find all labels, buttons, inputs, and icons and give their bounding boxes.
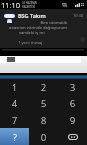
staticText: BSG Takım bbox=[18, 12, 46, 19]
staticText: 0 bbox=[41, 131, 47, 143]
button[interactable]: Backspace bbox=[58, 128, 87, 145]
staticText: 5 bbox=[41, 97, 47, 109]
staticText: 6 bbox=[70, 97, 76, 109]
staticText: 10:30 bbox=[73, 13, 84, 18]
button[interactable]: 0 bbox=[29, 128, 58, 145]
button[interactable]: 6 bbox=[58, 95, 87, 111]
button[interactable]: 9 bbox=[58, 111, 87, 128]
staticText: 1 bbox=[12, 81, 18, 93]
staticText: 9 bbox=[70, 114, 76, 126]
button[interactable]: 2 bbox=[29, 79, 58, 95]
staticText: 24 HAZİRAN bbox=[22, 1, 37, 5]
staticText: 11:10 bbox=[1, 0, 20, 9]
button[interactable]: Emergency call bbox=[0, 128, 29, 145]
staticText: PAZARTESİ bbox=[22, 5, 36, 9]
staticText: 7 bbox=[12, 114, 18, 126]
button[interactable]: 8 bbox=[29, 111, 58, 128]
button[interactable]: 7 bbox=[0, 111, 29, 128]
staticText: 8 bbox=[41, 114, 47, 126]
staticText: 3 bbox=[70, 81, 76, 93]
staticText: Ben otomatik anasının vitrinde dağıtıyor… bbox=[0, 20, 67, 30]
button[interactable]: 5 bbox=[29, 95, 58, 111]
button[interactable] bbox=[0, 9, 87, 48]
staticText: 4 bbox=[12, 97, 18, 109]
button[interactable]: 4 bbox=[0, 95, 29, 111]
button[interactable]: 1 bbox=[0, 79, 29, 95]
staticText: 2 bbox=[41, 81, 47, 93]
button[interactable]: 3 bbox=[58, 79, 87, 95]
staticText: ? bbox=[13, 131, 17, 143]
staticText: sandeki iş mi bbox=[19, 30, 45, 36]
button[interactable]: Expand notification bbox=[80, 37, 85, 42]
staticText: 1 yeni mesaj bbox=[18, 40, 43, 46]
